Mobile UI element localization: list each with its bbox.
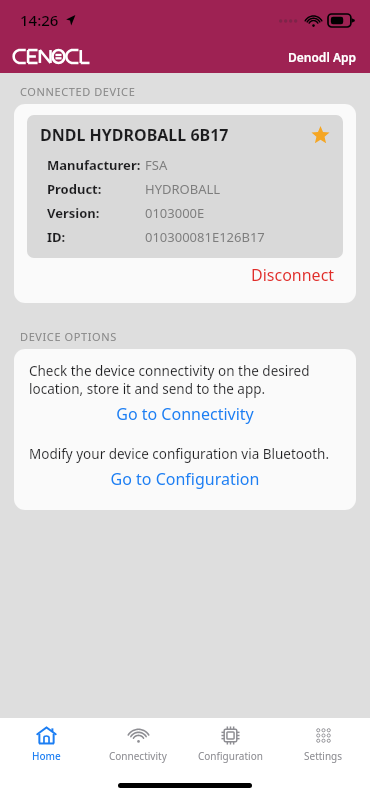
staticText: Configuration: [198, 749, 263, 763]
button[interactable]: Configuration: [184, 718, 277, 770]
staticText: Product:: [47, 180, 145, 198]
staticText: 14:26: [20, 10, 59, 30]
staticText: 0103000E: [145, 204, 205, 222]
other: Favourite: [311, 126, 330, 145]
button[interactable]: Disconnect: [243, 258, 343, 292]
button[interactable]: Connectivity: [92, 718, 184, 770]
staticText: HYDROBALL: [145, 180, 221, 198]
staticText: Denodl App: [288, 49, 356, 65]
button[interactable]: Home: [0, 718, 92, 770]
button[interactable]: Go to Connectivity: [29, 398, 341, 430]
staticText: 010300081E126B17: [145, 228, 265, 246]
button[interactable]: Go to Configuration: [29, 463, 341, 495]
staticText: Settings: [304, 749, 343, 763]
staticText: Version:: [47, 204, 145, 222]
staticText: Connectivity: [109, 749, 167, 763]
staticText: DEVICE OPTIONS: [20, 329, 117, 344]
staticText: CONNECTED DEVICE: [20, 84, 136, 99]
staticText: Go to Configuration: [29, 468, 341, 490]
staticText: FSA: [145, 156, 168, 174]
staticText: Manufacturer:: [47, 156, 145, 174]
button[interactable]: Settings: [277, 718, 370, 770]
staticText: Go to Connectivity: [29, 403, 341, 425]
staticText: Check the device connectivity on the des…: [29, 362, 341, 398]
staticText: Disconnect: [251, 264, 335, 286]
staticText: DNDL HYDROBALL 6B17: [40, 124, 311, 146]
staticText: Modify your device configuration via Blu…: [29, 445, 330, 463]
staticText: ID:: [47, 228, 145, 246]
staticText: Home: [32, 749, 61, 763]
